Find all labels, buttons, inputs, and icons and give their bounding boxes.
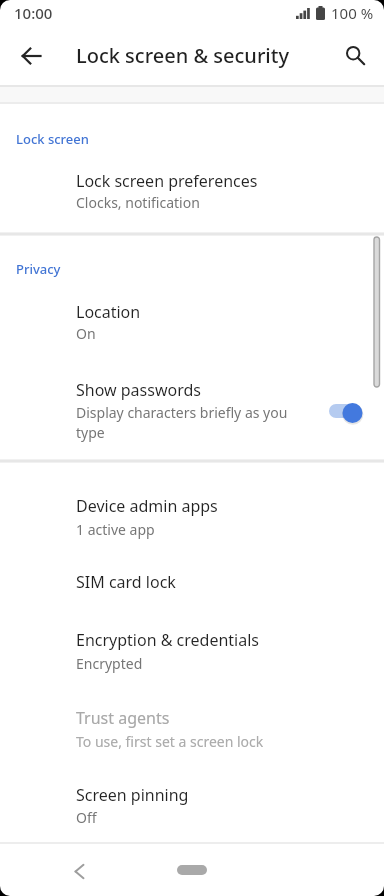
staticText: SIM card lock [76,571,176,593]
button[interactable]: Encryption & credentials [0,611,384,689]
staticText: 1 active app [76,520,155,539]
button[interactable]: Location [0,288,384,348]
staticText: Clocks, notification [76,193,200,212]
staticText: Location [76,301,141,323]
button[interactable]: Lock screen preferences [0,152,384,233]
button[interactable]: SIM card lock [0,554,384,611]
staticText: Encrypted [76,654,143,673]
button[interactable]: Screen pinning [0,767,384,842]
staticText: Lock screen & security [76,42,289,69]
staticText: Display characters briefly as you type [76,403,302,442]
staticText: Lock screen [16,130,89,148]
staticText: 100 % [331,3,374,23]
staticText: On [76,324,96,343]
staticText: Show passwords [76,379,201,401]
button[interactable] [8,33,54,79]
button[interactable]: Device admin apps [0,478,384,554]
button[interactable] [57,849,101,893]
staticText: To use, first set a screen lock [76,732,264,751]
staticText: Lock screen preferences [76,170,258,192]
staticText: Privacy [16,260,61,278]
staticText: 10:00 [14,3,53,23]
button[interactable]: Show passwords [0,368,384,456]
button[interactable] [334,34,378,78]
staticText: Encryption & credentials [76,629,259,651]
staticText: Device admin apps [76,495,218,517]
staticText: Off [76,808,97,827]
button[interactable] [177,865,207,875]
staticText: Trust agents [76,707,170,729]
staticText: Screen pinning [76,784,189,806]
